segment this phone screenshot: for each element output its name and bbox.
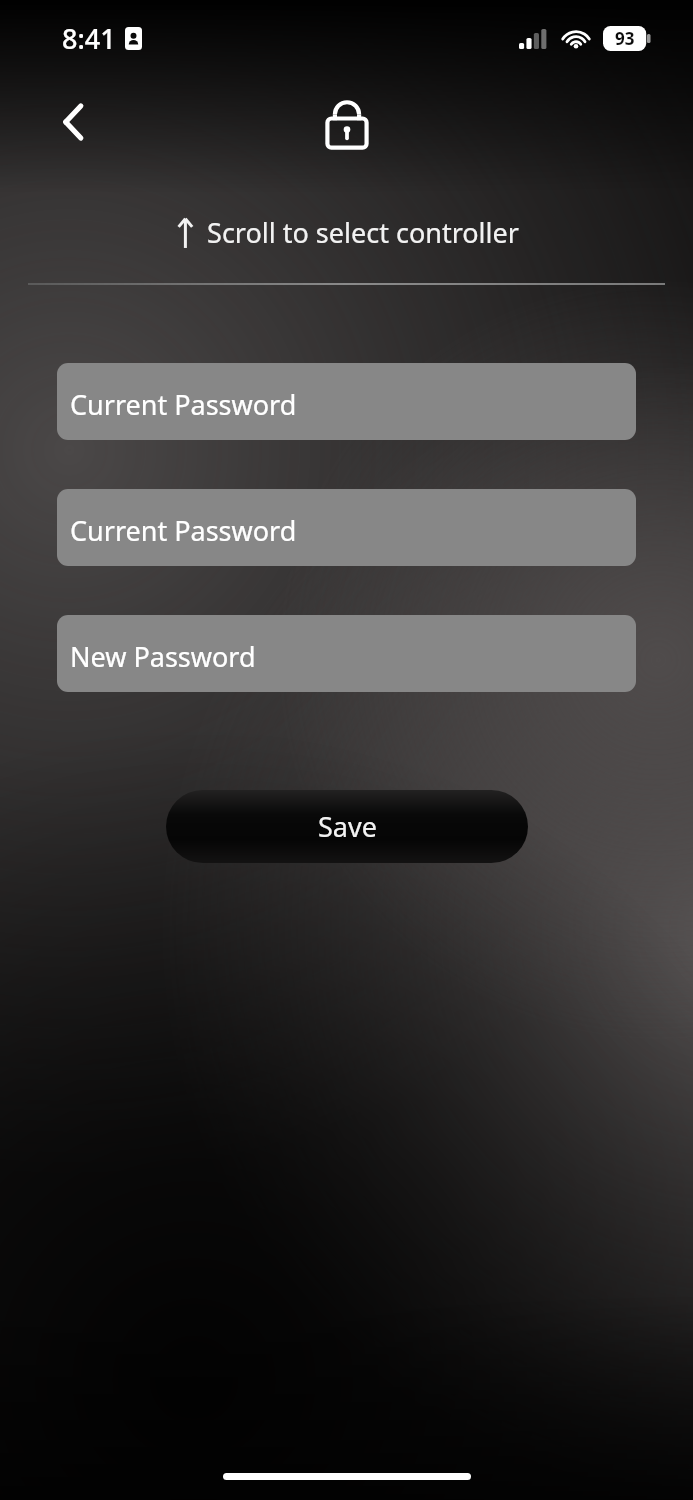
staticText: Current Password xyxy=(70,386,297,423)
staticText: Scroll to select controller xyxy=(207,214,519,251)
staticText: New Password xyxy=(70,638,256,675)
staticText: Current Password xyxy=(70,512,297,549)
button[interactable]: Save xyxy=(166,790,528,863)
staticText: Save xyxy=(318,808,377,845)
staticText: 8:41 xyxy=(62,20,116,57)
button[interactable]: New Password xyxy=(57,615,636,692)
button[interactable]: Back xyxy=(44,93,102,151)
button[interactable]: Current Password xyxy=(57,363,636,440)
staticText: 93 xyxy=(615,27,635,50)
other: Locked xyxy=(317,93,377,153)
button[interactable]: Current Password xyxy=(57,489,636,566)
